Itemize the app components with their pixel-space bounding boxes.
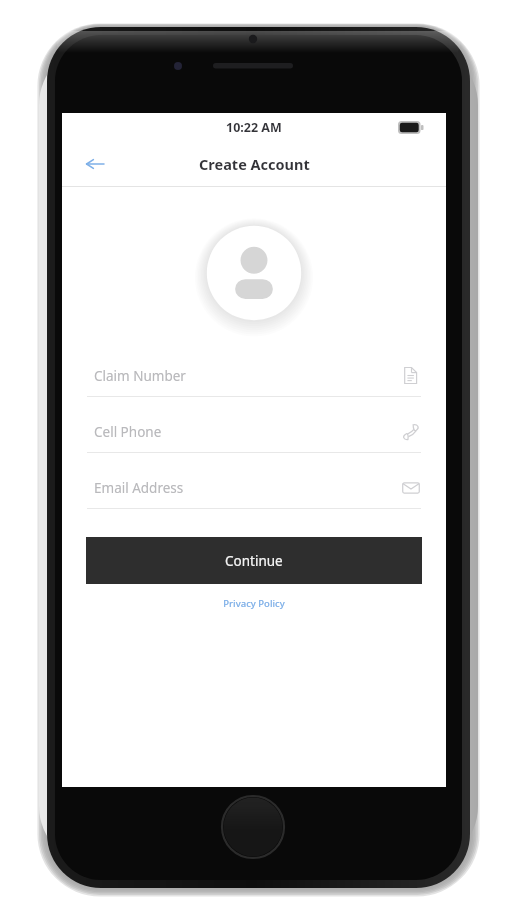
button[interactable]: Claim Number: [62, 355, 446, 411]
staticText: 10:22 AM: [226, 119, 282, 136]
button[interactable]: Cell Phone: [62, 411, 446, 467]
staticText: Cell Phone: [94, 423, 162, 441]
staticText: Email Address: [94, 479, 184, 497]
button[interactable]: Back: [78, 147, 112, 181]
staticText: Create Account: [199, 154, 310, 174]
staticText: Continue: [225, 552, 283, 570]
staticText: Claim Number: [94, 367, 186, 385]
button[interactable]: Continue: [86, 537, 422, 584]
button[interactable]: Privacy Policy: [217, 595, 291, 612]
button[interactable]: Email Address: [62, 467, 446, 523]
staticText: Privacy Policy: [223, 597, 285, 610]
